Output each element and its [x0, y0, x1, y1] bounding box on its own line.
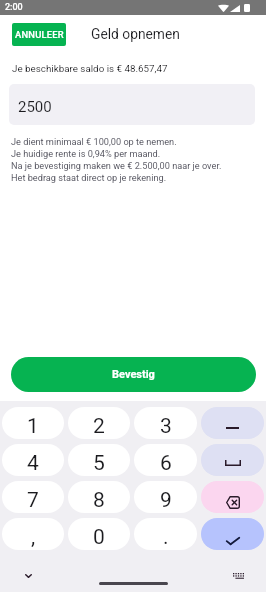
- button[interactable]: 6: [134, 444, 197, 476]
- button[interactable]: Minus: [201, 407, 264, 439]
- staticText: 2:00: [5, 2, 23, 13]
- button[interactable]: Period: [134, 518, 197, 550]
- button[interactable]: Bevestig: [11, 357, 256, 392]
- staticText: 3: [160, 414, 172, 439]
- staticText: Geld opnemen: [91, 26, 180, 42]
- staticText: ,: [31, 525, 36, 550]
- button[interactable]: 8: [68, 481, 130, 513]
- staticText: ANNULEER: [15, 29, 64, 40]
- staticText: Bevestig: [112, 368, 155, 381]
- button[interactable]: 2500: [9, 84, 255, 125]
- staticText: 1: [27, 414, 39, 439]
- button[interactable]: 3: [134, 407, 197, 439]
- staticText: 9: [160, 488, 172, 513]
- staticText: Je huidige rente is 0,94% per maand.: [11, 148, 161, 159]
- button[interactable]: Enter: [201, 518, 264, 550]
- button[interactable]: 0: [68, 518, 130, 550]
- button[interactable]: 7: [2, 481, 64, 513]
- button[interactable]: Space: [201, 444, 264, 476]
- staticText: 8: [93, 488, 105, 513]
- button[interactable]: 1: [2, 407, 64, 439]
- staticText: 6: [160, 451, 172, 476]
- button[interactable]: ANNULEER: [12, 23, 66, 46]
- staticText: Je dient minimaal € 100,00 op te nemen.: [11, 136, 177, 147]
- staticText: Je beschikbare saldo is € 48.657,47: [12, 63, 168, 74]
- button[interactable]: Hide keyboard: [18, 566, 38, 586]
- button[interactable]: 9: [134, 481, 197, 513]
- staticText: 0: [93, 525, 105, 550]
- button[interactable]: Change keyboard: [228, 566, 248, 586]
- button[interactable]: 5: [68, 444, 130, 476]
- button[interactable]: 2: [68, 407, 130, 439]
- staticText: .: [163, 525, 169, 550]
- staticText: 7: [27, 488, 39, 513]
- button[interactable]: 4: [2, 444, 64, 476]
- staticText: Na je bevestiging maken we € 2.500,00 na…: [11, 160, 222, 171]
- staticText: 5: [93, 451, 105, 476]
- button[interactable]: Comma: [2, 518, 64, 550]
- staticText: Het bedrag staat direct op je rekening.: [11, 172, 167, 183]
- button[interactable]: Backspace: [201, 481, 264, 513]
- staticText: 2: [93, 414, 105, 439]
- staticText: 4: [27, 451, 39, 476]
- staticText: 2500: [18, 98, 52, 116]
